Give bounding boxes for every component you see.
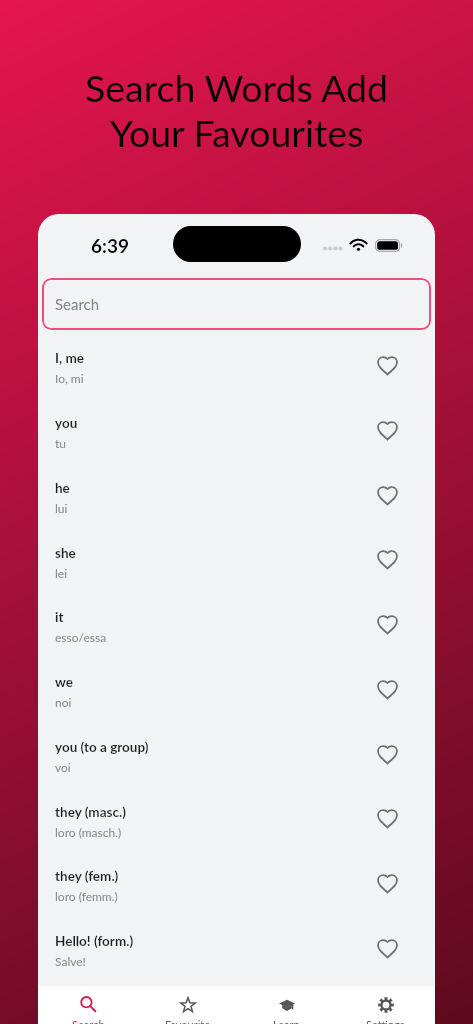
staticText: 6:39 [91, 234, 129, 257]
staticText: he [55, 480, 70, 496]
button[interactable]: Add to favourites [373, 869, 403, 899]
staticText: they (masc.) [55, 804, 126, 820]
staticText: esso/essa [55, 630, 107, 644]
button[interactable]: Add to favourites [373, 416, 403, 446]
button[interactable]: Search [38, 986, 138, 1024]
button[interactable]: Learn [237, 986, 336, 1024]
staticText: Io, mi [55, 371, 84, 385]
staticText: they (fem.) [55, 868, 119, 884]
button[interactable]: we [38, 657, 435, 722]
button[interactable]: he [38, 463, 435, 528]
staticText: loro (masch.) [55, 825, 122, 839]
button[interactable]: Add to favourites [373, 610, 403, 640]
staticText: Settings [366, 1018, 405, 1024]
button[interactable]: Add to favourites [373, 481, 403, 511]
button[interactable]: Add to favourites [373, 351, 403, 381]
button[interactable]: Add to favourites [373, 545, 403, 575]
staticText: you (to a group) [55, 739, 149, 755]
button[interactable]: you (to a group) [38, 722, 435, 787]
staticText: Search [55, 295, 100, 313]
staticText: loro (femm.) [55, 889, 118, 903]
staticText: voi [55, 760, 71, 774]
staticText: lui [55, 501, 68, 515]
staticText: lei [55, 566, 68, 580]
staticText: Search [72, 1018, 105, 1024]
staticText: I, me [55, 350, 84, 366]
staticText: we [55, 674, 73, 690]
button[interactable]: it [38, 592, 435, 657]
staticText: tu [55, 436, 66, 450]
staticText: she [55, 545, 76, 561]
staticText: Learn [273, 1018, 300, 1024]
button[interactable]: you [38, 398, 435, 463]
button[interactable]: Hello! (inf.) [38, 981, 435, 1024]
button[interactable]: Add to favourites [373, 934, 403, 964]
staticText: it [55, 609, 64, 625]
button[interactable]: Search [42, 278, 431, 330]
button[interactable]: Add to favourites [373, 740, 403, 770]
button[interactable]: Add to favourites [373, 675, 403, 705]
staticText: noi [55, 695, 72, 709]
button[interactable]: Settings [336, 986, 435, 1024]
button[interactable]: Hello! (form.) [38, 916, 435, 981]
button[interactable]: Add to favourites [373, 804, 403, 834]
staticText: Hello! (form.) [55, 933, 134, 949]
button[interactable]: I, me [38, 333, 435, 398]
button[interactable]: they (masc.) [38, 787, 435, 851]
button[interactable]: she [38, 528, 435, 592]
staticText: Favourite [165, 1018, 211, 1024]
staticText: you [55, 415, 78, 431]
button[interactable]: Favourite [138, 986, 237, 1024]
staticText: Salve! [55, 954, 86, 968]
button[interactable]: they (fem.) [38, 851, 435, 916]
staticText: Hello! (inf.) [55, 987, 121, 1003]
button[interactable]: Add to favourites [373, 988, 403, 1018]
staticText: Search Words Add Your Favourites [0, 65, 473, 155]
staticText: Ciao! [55, 1008, 82, 1022]
